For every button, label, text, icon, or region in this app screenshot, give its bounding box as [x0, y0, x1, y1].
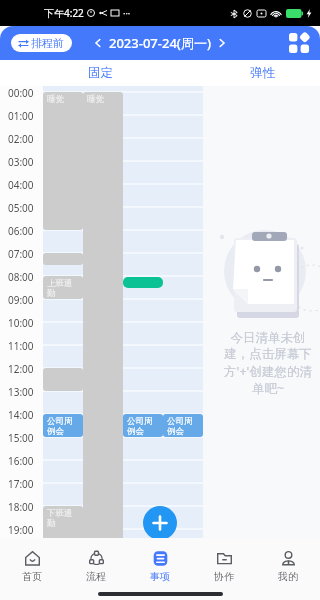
staticText: 公司周 例会 — [127, 416, 153, 437]
staticText: 协作 — [214, 570, 234, 583]
staticText: 今日清单未创建，点击屏幕下方'+'创建您的清单吧~ — [223, 330, 313, 397]
staticText: 弹性 — [250, 65, 275, 81]
staticText: 01:00 — [8, 109, 34, 123]
button[interactable]: 公司周 例会 — [163, 414, 203, 437]
staticText: 固定 — [88, 65, 113, 81]
staticText: 事项 — [150, 570, 170, 583]
staticText: ··· — [123, 7, 131, 19]
button[interactable]: 我的 — [256, 542, 320, 590]
button[interactable]: 弹性 — [225, 60, 299, 86]
staticText: 20:00 — [8, 546, 34, 560]
button[interactable]: Previous day — [90, 35, 106, 51]
staticText: 公司周 例会 — [167, 416, 193, 437]
button[interactable]: 公司周 例会 — [43, 414, 83, 437]
staticText: 我的 — [278, 570, 298, 583]
staticText: 睡觉 — [87, 94, 104, 105]
button[interactable] — [43, 253, 83, 265]
staticText: 09:00 — [8, 293, 34, 307]
button[interactable]: 下班通 勤 — [43, 506, 83, 552]
staticText: 19:00 — [8, 523, 34, 537]
staticText: 14:00 — [8, 408, 34, 422]
staticText: 00:00 — [8, 86, 34, 100]
button[interactable]: Next day — [214, 35, 230, 51]
button[interactable]: Modules — [289, 33, 309, 53]
staticText: 公司周 例会 — [47, 416, 73, 437]
staticText: 16:00 — [8, 454, 34, 468]
staticText: 12:00 — [8, 362, 34, 376]
staticText: 下午4:22 — [44, 6, 84, 20]
button[interactable]: 协作 — [192, 542, 256, 590]
staticText: 06:00 — [8, 224, 34, 238]
staticText: 流程 — [86, 570, 106, 583]
button[interactable]: 流程 — [64, 542, 128, 590]
staticText: 08:00 — [8, 270, 34, 284]
button[interactable]: 睡觉 — [43, 92, 83, 230]
staticText: 睡觉 — [47, 94, 64, 105]
staticText: 10:00 — [8, 316, 34, 330]
staticText: 2023-07-24(周一) — [109, 34, 211, 52]
staticText: 05:00 — [8, 201, 34, 215]
staticText: 排程前 — [31, 36, 64, 50]
staticText: 04:00 — [8, 178, 34, 192]
staticText: 18:00 — [8, 500, 34, 514]
button[interactable]: 首页 — [0, 542, 64, 590]
staticText: 13:00 — [8, 385, 34, 399]
button[interactable]: Add — [143, 506, 177, 540]
staticText: 首页 — [22, 570, 42, 583]
button[interactable]: 事项 — [128, 542, 192, 590]
button[interactable]: 公司周 例会 — [123, 414, 163, 437]
staticText: 07:00 — [8, 247, 34, 261]
staticText: 下班通 勤 — [47, 508, 73, 529]
staticText: 02:00 — [8, 132, 34, 146]
staticText: 11:00 — [8, 339, 34, 353]
button[interactable] — [43, 368, 83, 391]
staticText: 03:00 — [8, 155, 34, 169]
button[interactable]: 排程前 — [11, 34, 72, 52]
button[interactable]: 固定 — [63, 60, 137, 86]
staticText: 上班通 勤 — [47, 278, 73, 299]
button[interactable]: 上班通 勤 — [43, 276, 83, 299]
staticText: 15:00 — [8, 431, 34, 445]
button[interactable]: 睡觉 — [83, 92, 123, 544]
button[interactable] — [123, 277, 163, 288]
staticText: 17:00 — [8, 477, 34, 491]
